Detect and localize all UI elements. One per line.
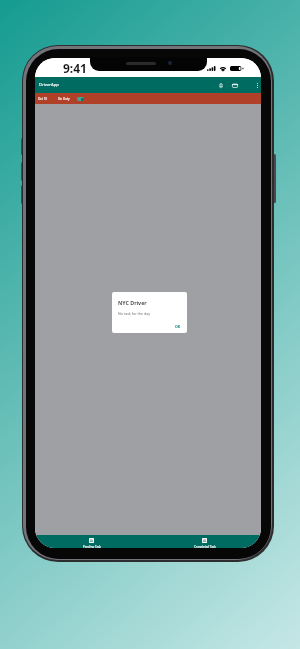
button[interactable]: OK [173,322,183,331]
staticText: On Duty [58,97,70,101]
button[interactable]: Notifications [215,78,226,92]
staticText: 9:41 [63,60,87,76]
button[interactable]: On duty toggle [77,97,84,101]
button[interactable]: Completed Task [148,535,261,548]
button[interactable]: Pending Task [35,535,148,548]
button[interactable]: Calendar [229,78,240,92]
staticText: Oct 10 [38,97,48,101]
button[interactable]: More options [254,78,261,92]
staticText: Pending Task [83,545,101,548]
staticText: No task for the day [118,311,151,316]
staticText: DriverApp [39,82,59,88]
staticText: Completed Task [194,545,216,548]
staticText: OK [175,324,181,329]
staticText: NYC Driver [118,299,147,306]
